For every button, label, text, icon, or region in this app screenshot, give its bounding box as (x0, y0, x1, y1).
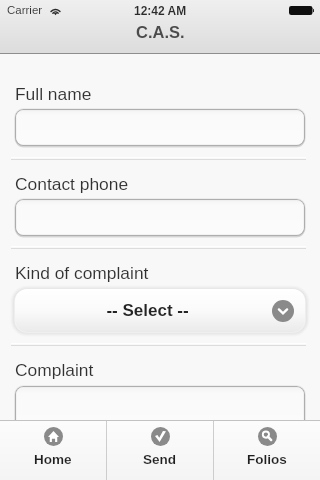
staticText: Send (143, 452, 177, 467)
staticText: Home (34, 452, 72, 467)
button[interactable]: Send (107, 421, 213, 480)
staticText: Complaint (15, 360, 94, 379)
button[interactable]: Folios (214, 421, 320, 480)
staticText: -- Select -- (15, 301, 280, 320)
staticText: Contact phone (15, 174, 129, 193)
button[interactable] (15, 199, 305, 236)
button[interactable] (15, 386, 305, 436)
button[interactable]: Home (0, 421, 106, 480)
staticText: Carrier (7, 4, 43, 17)
staticText: Kind of complaint (15, 263, 149, 282)
staticText: Full name (15, 84, 92, 103)
staticText: C.A.S. (136, 23, 185, 41)
button[interactable] (15, 109, 305, 146)
button[interactable]: -- Select -- (15, 289, 305, 332)
staticText: Folios (247, 452, 287, 467)
staticText: 12:42 AM (134, 4, 187, 17)
